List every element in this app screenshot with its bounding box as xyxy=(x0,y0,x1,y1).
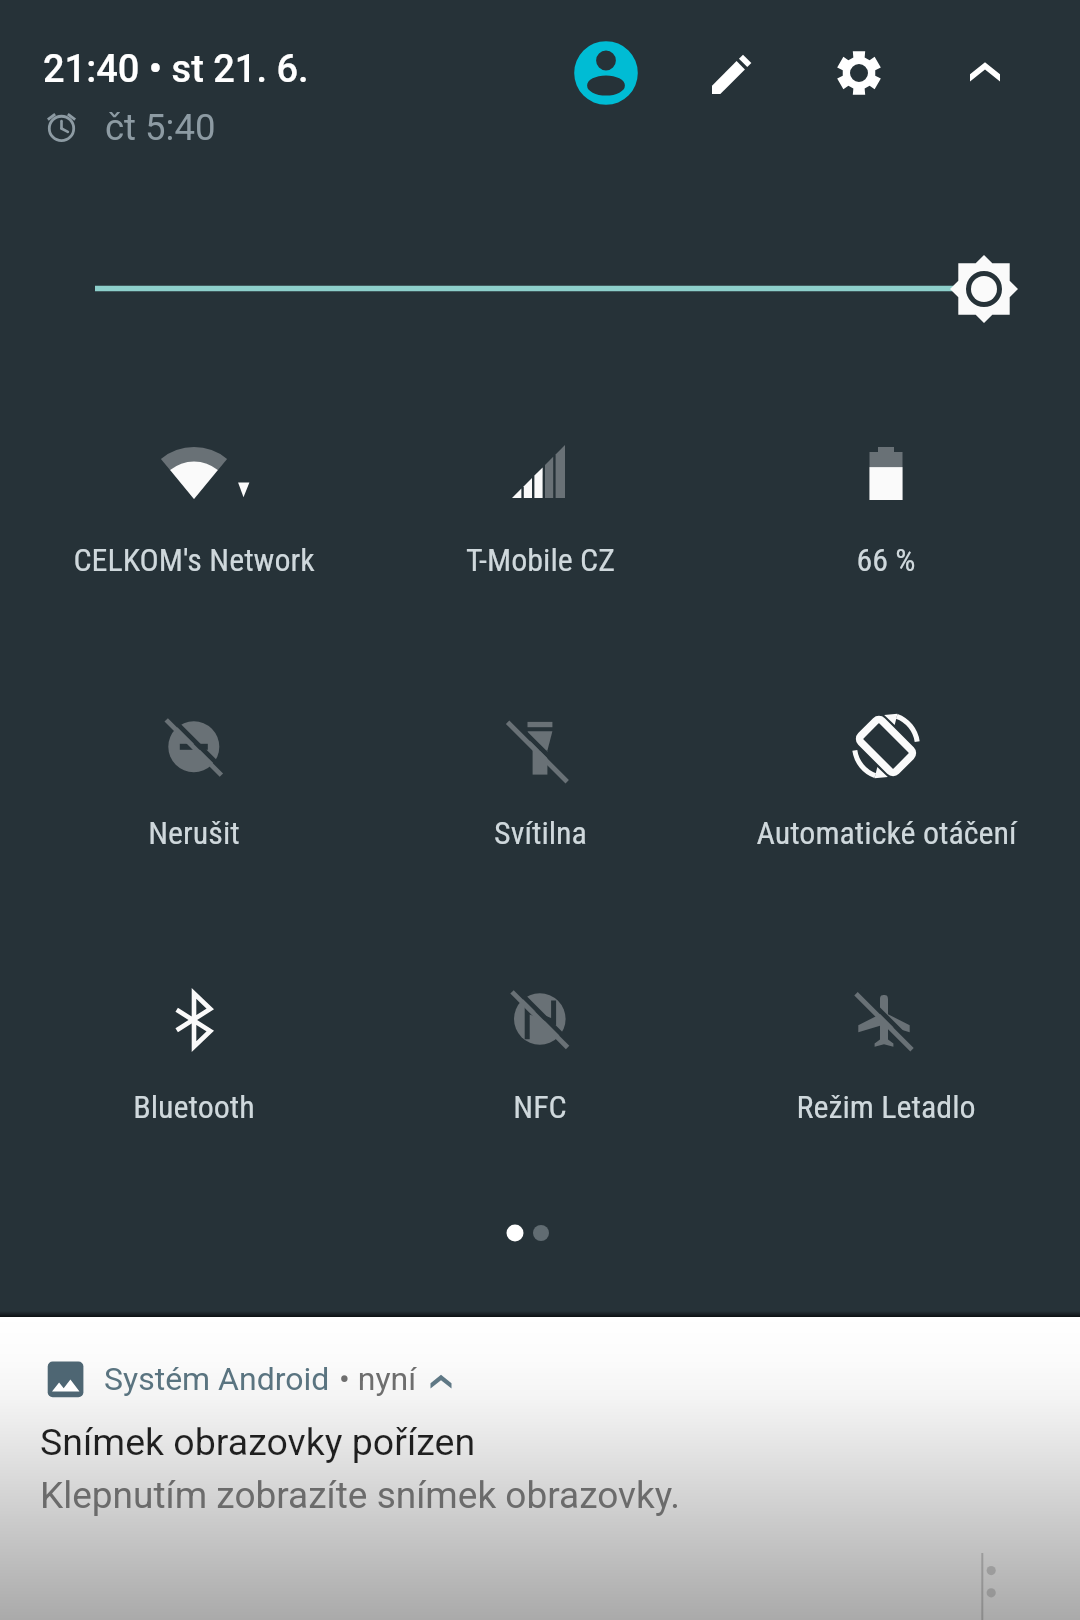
button[interactable] xyxy=(34,676,354,856)
staticText: Nerušit xyxy=(148,814,240,852)
button[interactable]: User account xyxy=(575,42,638,105)
button[interactable]: Collapse panel xyxy=(953,42,1017,106)
button[interactable]: Brightness slider xyxy=(0,250,1080,330)
staticText: čt 5:40 xyxy=(105,106,216,149)
button[interactable]: Settings xyxy=(827,42,891,106)
staticText: • nyní xyxy=(339,1360,417,1398)
button[interactable] xyxy=(34,403,354,583)
staticText: 21:40 • st 21. 6. xyxy=(43,47,309,92)
staticText: T-Mobile CZ xyxy=(466,541,615,579)
button[interactable]: Systém Android xyxy=(0,1317,1080,1620)
staticText: CELKOM's Network xyxy=(73,541,315,579)
staticText: Automatické otáčení xyxy=(756,814,1017,852)
button[interactable] xyxy=(380,676,700,856)
button[interactable] xyxy=(726,403,1046,583)
staticText: Snímek obrazovky pořízen xyxy=(40,1420,476,1464)
staticText: Režim Letadlo xyxy=(796,1088,976,1126)
staticText: Bluetooth xyxy=(133,1088,255,1126)
button[interactable] xyxy=(380,403,700,583)
staticText: Systém Android xyxy=(104,1360,330,1398)
staticText: 66 % xyxy=(856,541,916,579)
button[interactable]: Edit tiles xyxy=(700,42,764,106)
button[interactable] xyxy=(34,950,354,1130)
staticText: NFC xyxy=(513,1088,567,1126)
button[interactable] xyxy=(726,676,1046,856)
button[interactable] xyxy=(726,950,1046,1130)
staticText: Klepnutím zobrazíte snímek obrazovky. xyxy=(40,1474,681,1517)
staticText: Svítilna xyxy=(494,814,587,852)
button[interactable] xyxy=(380,950,700,1130)
